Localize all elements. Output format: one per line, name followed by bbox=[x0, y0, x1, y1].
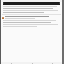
button[interactable]: Tab 1 bbox=[1, 62, 22, 64]
button[interactable] bbox=[1, 16, 62, 19]
button[interactable]: Navigate up bbox=[3, 2, 60, 5]
button[interactable]: Tab 3 bbox=[42, 62, 62, 64]
button[interactable]: Tab 2 bbox=[22, 62, 42, 64]
